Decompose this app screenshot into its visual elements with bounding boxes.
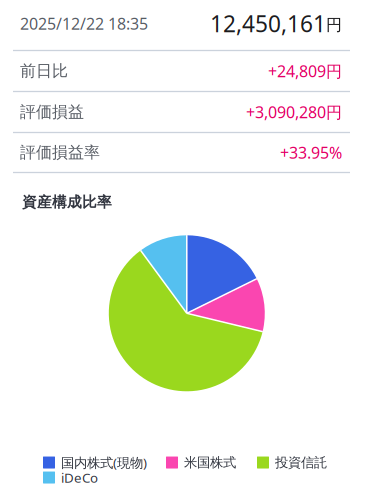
button[interactable]: 評価損益 xyxy=(0,92,365,132)
staticText: 資産構成比率 xyxy=(22,193,112,211)
button[interactable]: 前日比 xyxy=(0,51,365,91)
button[interactable]: 評価損益率 xyxy=(0,133,365,172)
staticText: iDeCo xyxy=(61,469,98,486)
staticText: 評価損益率 xyxy=(20,143,100,162)
button[interactable]: 2025/12/22 18:35 xyxy=(0,0,365,50)
staticText: 米国株式 xyxy=(184,454,236,471)
staticText: 投資信託 xyxy=(275,454,327,471)
staticText: +24,809円 xyxy=(268,60,342,82)
staticText: 円 xyxy=(326,15,342,35)
staticText: 2025/12/22 18:35 xyxy=(20,13,148,34)
staticText: 国内株式(現物) xyxy=(61,454,147,471)
staticText: 12,450,161 xyxy=(210,8,326,38)
staticText: +3,090,280円 xyxy=(246,101,342,123)
staticText: 評価損益 xyxy=(20,102,84,122)
staticText: 前日比 xyxy=(20,61,68,81)
staticText: +33.95% xyxy=(280,142,342,163)
